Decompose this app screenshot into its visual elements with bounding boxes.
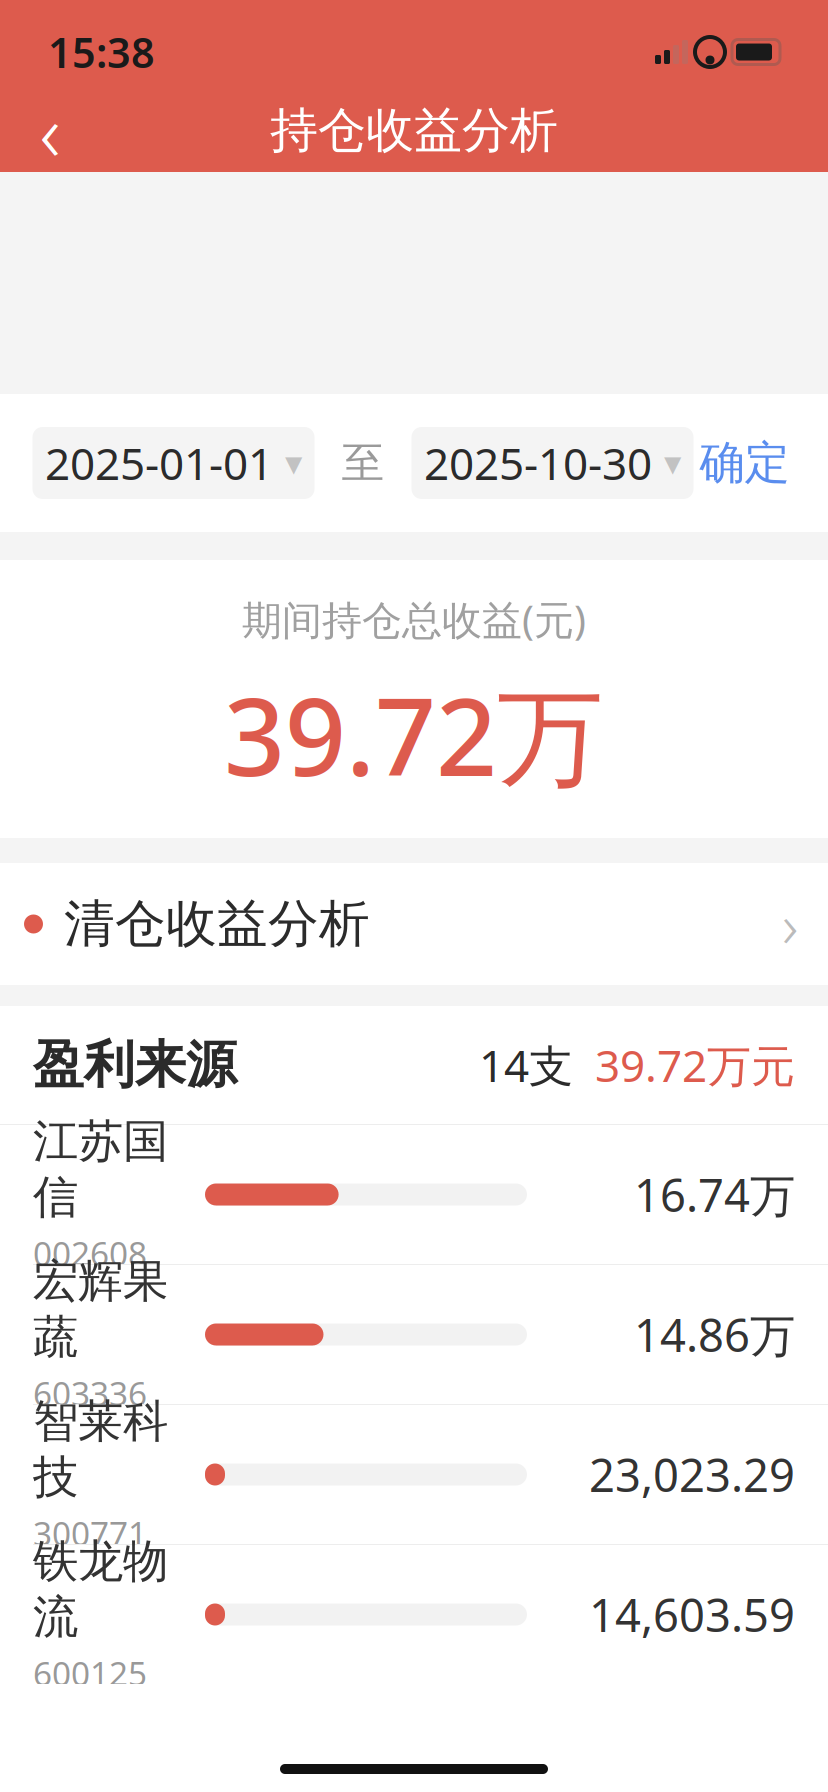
button[interactable]: 清仓收益分析: [0, 863, 828, 985]
staticText: ‹: [39, 77, 60, 183]
button[interactable]: 确定: [693, 427, 795, 499]
button[interactable]: 2025-10-30: [411, 427, 693, 499]
staticText: 14.86万: [634, 1304, 795, 1365]
staticText: 宏辉果蔬: [33, 1254, 168, 1365]
staticText: 14支: [479, 1036, 573, 1094]
staticText: 39.72万: [224, 664, 604, 805]
staticText: 2025-01-01: [45, 434, 273, 492]
button[interactable]: Back: [10, 90, 90, 170]
staticText: 至: [341, 437, 384, 489]
staticText: 14,603.59: [589, 1584, 795, 1645]
staticText: 23,023.29: [589, 1444, 795, 1505]
staticText: 300771: [33, 1511, 147, 1555]
staticText: 期间持仓总收益(元): [242, 593, 586, 646]
staticText: 江苏国信: [33, 1114, 168, 1225]
staticText: 铁龙物流: [33, 1534, 168, 1645]
staticText: ▾: [285, 443, 302, 483]
button[interactable]: 2025-01-01: [32, 427, 314, 499]
staticText: 15:38: [48, 25, 155, 79]
staticText: 002608: [33, 1231, 147, 1275]
staticText: ›: [782, 883, 798, 965]
staticText: 39.72万元: [595, 1036, 795, 1094]
staticText: 智莱科技: [33, 1394, 168, 1505]
staticText: 600125: [33, 1651, 147, 1695]
staticText: 2025-10-30: [424, 434, 652, 492]
staticText: ▾: [664, 443, 681, 483]
staticText: 清仓收益分析: [64, 893, 370, 955]
staticText: 16.74万: [634, 1164, 795, 1225]
staticText: 持仓收益分析: [270, 101, 558, 160]
staticText: 603336: [33, 1371, 147, 1415]
staticText: 确定: [699, 435, 789, 491]
staticText: 盈利来源: [33, 1034, 237, 1096]
